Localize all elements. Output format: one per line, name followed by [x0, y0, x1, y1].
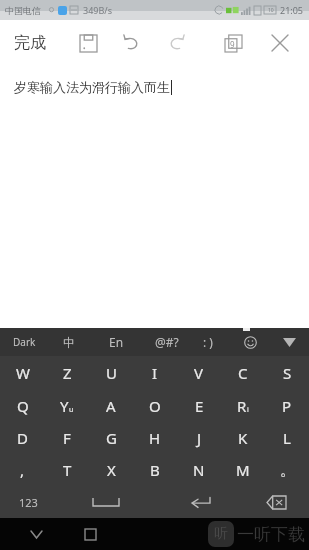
- button[interactable]: Hide keyboard: [274, 328, 304, 356]
- staticText: E: [195, 396, 204, 416]
- staticText: 完成: [14, 33, 46, 53]
- button[interactable]: En: [109, 328, 124, 356]
- button[interactable]: K: [221, 422, 265, 454]
- staticText: 21:05: [280, 4, 304, 16]
- staticText: J: [197, 428, 202, 448]
- button[interactable]: C: [221, 356, 265, 389]
- staticText: G: [106, 428, 117, 448]
- staticText: 。: [280, 461, 295, 480]
- button[interactable]: J: [177, 422, 221, 454]
- button[interactable]: V: [177, 356, 221, 389]
- staticText: 一听下载: [237, 524, 305, 545]
- staticText: V: [194, 363, 204, 383]
- button[interactable]: A: [89, 389, 133, 422]
- staticText: Z: [63, 363, 72, 383]
- button[interactable]: O: [133, 389, 177, 422]
- staticText: X: [107, 460, 116, 480]
- button[interactable]: L: [265, 422, 309, 454]
- staticText: 349B/s: [83, 4, 112, 16]
- button[interactable]: F: [45, 422, 89, 454]
- staticText: K: [238, 428, 248, 448]
- button[interactable]: Z: [45, 356, 89, 389]
- button[interactable]: Backspace: [244, 486, 309, 518]
- button[interactable]: W: [0, 356, 45, 389]
- button[interactable]: R: [221, 389, 265, 422]
- button[interactable]: X: [89, 454, 133, 486]
- button[interactable]: G: [89, 422, 133, 454]
- staticText: L: [283, 428, 291, 448]
- button[interactable]: Dark: [13, 328, 36, 356]
- staticText: 9: [230, 39, 235, 50]
- staticText: Dark: [13, 335, 36, 349]
- staticText: 岁寒输入法为滑行输入而生: [14, 79, 170, 95]
- button[interactable]: Home: [70, 518, 110, 550]
- button[interactable]: E: [177, 389, 221, 422]
- staticText: W: [16, 363, 30, 383]
- staticText: S: [283, 363, 292, 383]
- staticText: : ): [203, 334, 213, 350]
- staticText: T: [63, 460, 72, 480]
- staticText: U: [106, 363, 117, 383]
- button[interactable]: D: [0, 422, 45, 454]
- button[interactable]: 123: [0, 486, 57, 518]
- staticText: 听: [214, 525, 228, 543]
- staticText: u: [69, 405, 74, 415]
- button[interactable]: N: [177, 454, 221, 486]
- staticText: 中国电信: [5, 5, 41, 16]
- staticText: R: [237, 396, 247, 416]
- button[interactable]: Enter: [155, 486, 244, 518]
- button[interactable]: Windows: [211, 21, 255, 65]
- button[interactable]: 完成: [14, 20, 46, 65]
- button[interactable]: P: [265, 389, 309, 422]
- staticText: F: [63, 428, 71, 448]
- button[interactable]: S: [265, 356, 309, 389]
- staticText: 123: [19, 495, 38, 510]
- button[interactable]: 。: [265, 454, 309, 486]
- button[interactable]: Redo: [154, 21, 198, 65]
- staticText: 10: [268, 7, 274, 14]
- staticText: D: [17, 428, 28, 448]
- button[interactable]: Emoji: [236, 328, 264, 356]
- staticText: Q: [17, 396, 29, 416]
- staticText: 中: [63, 335, 75, 350]
- staticText: i: [247, 405, 249, 415]
- button[interactable]: T: [45, 454, 89, 486]
- button[interactable]: 中: [63, 328, 75, 356]
- button[interactable]: H: [133, 422, 177, 454]
- button[interactable]: Close: [255, 20, 305, 65]
- button[interactable]: M: [221, 454, 265, 486]
- button[interactable]: Save: [66, 21, 110, 65]
- staticText: ,: [20, 460, 25, 480]
- staticText: O: [149, 396, 161, 416]
- staticText: H: [149, 428, 161, 448]
- button[interactable]: Y: [45, 389, 89, 422]
- button[interactable]: : ): [203, 328, 213, 356]
- button[interactable]: Q: [0, 389, 45, 422]
- staticText: I: [152, 363, 158, 383]
- staticText: En: [109, 334, 124, 350]
- button[interactable]: ,: [0, 454, 45, 486]
- staticText: @#?: [155, 334, 179, 350]
- staticText: P: [282, 396, 292, 416]
- button[interactable]: I: [133, 356, 177, 389]
- button[interactable]: @#?: [155, 328, 179, 356]
- staticText: Y: [60, 396, 69, 416]
- button[interactable]: Space: [57, 486, 155, 518]
- staticText: N: [193, 460, 205, 480]
- button[interactable]: B: [133, 454, 177, 486]
- staticText: M: [236, 460, 250, 480]
- staticText: A: [106, 396, 116, 416]
- button[interactable]: U: [89, 356, 133, 389]
- staticText: C: [238, 363, 248, 383]
- button[interactable]: Undo: [110, 21, 154, 65]
- button[interactable]: Back: [18, 518, 54, 550]
- staticText: B: [150, 460, 160, 480]
